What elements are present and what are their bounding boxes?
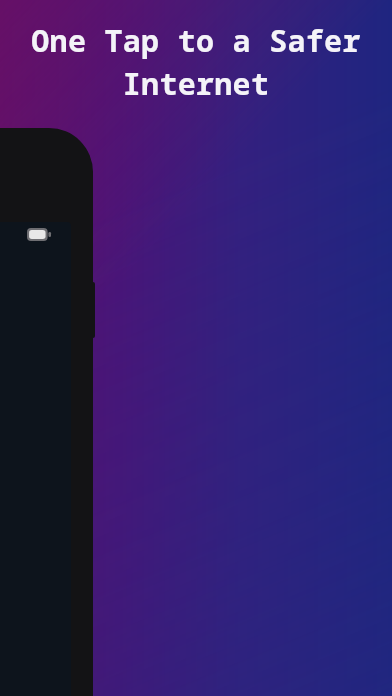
staticText: One Tap to a Safer Internet <box>31 20 361 104</box>
other: Battery <box>27 228 51 241</box>
